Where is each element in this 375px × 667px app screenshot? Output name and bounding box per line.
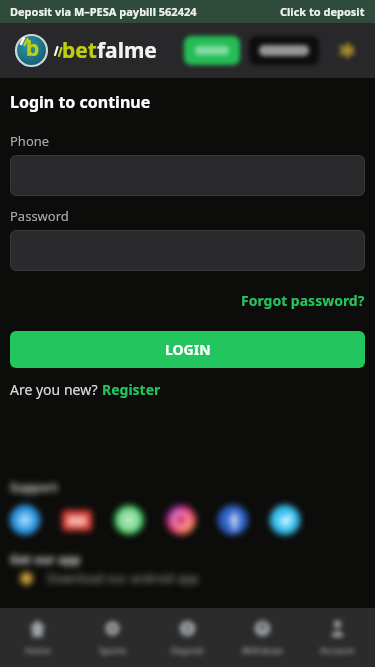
button[interactable] <box>114 505 144 535</box>
button[interactable] <box>184 36 240 65</box>
staticText: Deposit via M–PESA paybill 562424 <box>10 4 197 19</box>
button[interactable]: Click to deposit <box>280 4 365 19</box>
staticText: Password <box>10 207 69 225</box>
button[interactable]: Forgot password? <box>241 291 365 310</box>
staticText: Sports <box>99 644 127 656</box>
button[interactable]: Download our android app <box>10 570 199 586</box>
button[interactable]: Account <box>300 608 375 667</box>
staticText: Withdraw <box>242 644 283 656</box>
button[interactable]: Deposit <box>150 608 225 667</box>
button[interactable] <box>218 505 248 535</box>
staticText: Phone <box>10 132 50 150</box>
staticText: Home <box>25 644 51 656</box>
staticText: Download our android app <box>47 570 199 586</box>
staticText: Login to continue <box>10 91 151 113</box>
button[interactable] <box>10 155 365 196</box>
staticText: Support <box>10 479 58 495</box>
button[interactable]: Sports <box>75 608 150 667</box>
button[interactable] <box>10 230 365 271</box>
staticText: Are you new? <box>10 380 102 399</box>
button[interactable] <box>166 505 196 535</box>
button[interactable]: Home <box>0 608 75 667</box>
button[interactable] <box>270 505 300 535</box>
button[interactable]: Withdraw <box>225 608 300 667</box>
staticText: Deposit <box>171 644 204 656</box>
staticText: Account <box>320 644 355 656</box>
button[interactable]: Register <box>102 380 161 399</box>
button[interactable] <box>62 510 92 531</box>
staticText: betfalme <box>62 36 157 65</box>
staticText: LOGIN <box>165 340 211 359</box>
button[interactable] <box>10 505 40 535</box>
button[interactable] <box>249 36 319 65</box>
button[interactable]: LOGIN <box>10 331 365 368</box>
staticText: b <box>26 34 40 63</box>
staticText: Get our app <box>10 551 81 567</box>
